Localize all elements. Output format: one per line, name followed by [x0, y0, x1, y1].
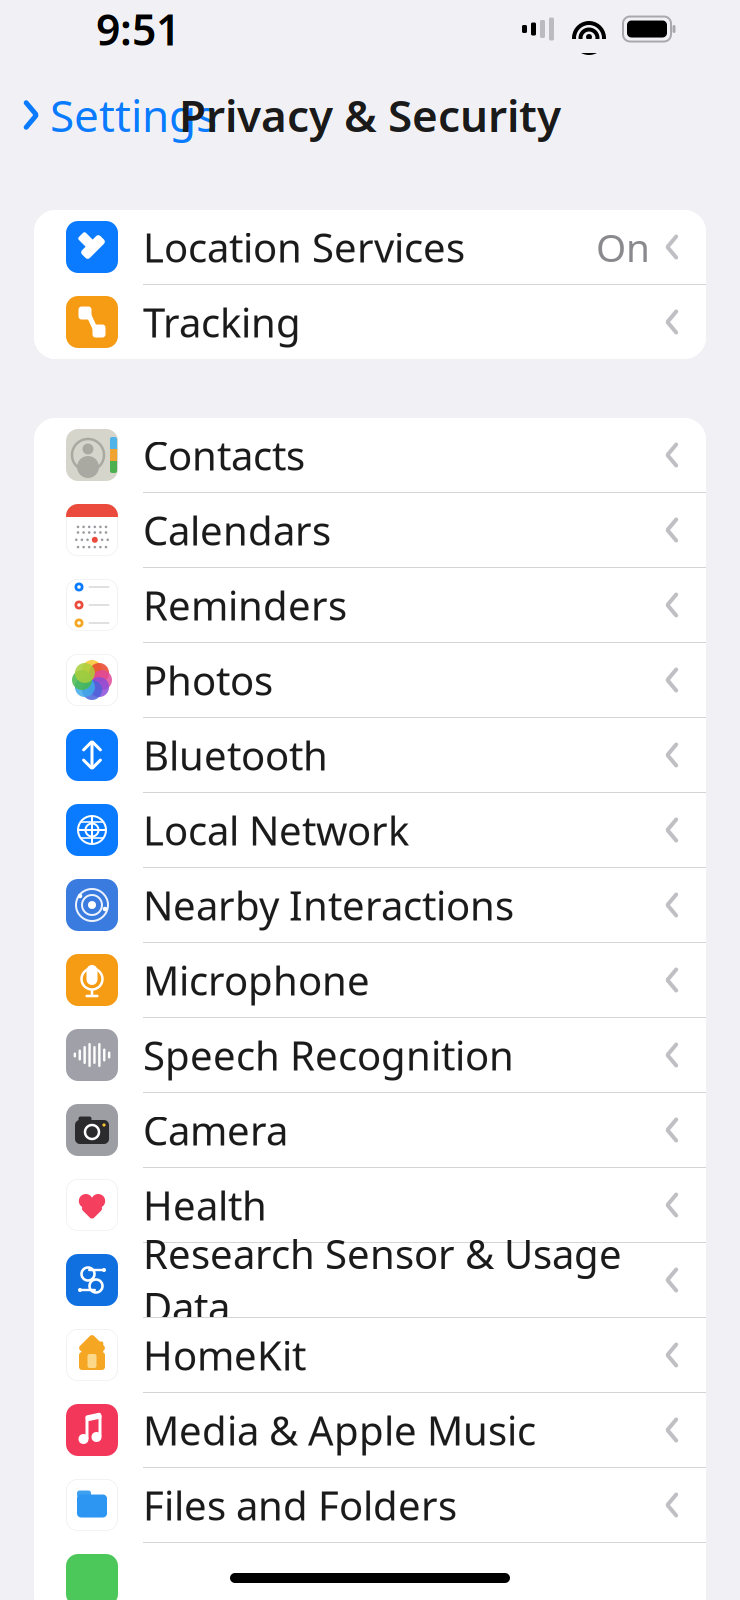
staticText: Tracking	[143, 295, 301, 348]
staticText: Privacy & Security	[179, 86, 561, 144]
staticText: Location Services	[143, 220, 465, 273]
staticText: 9:51	[96, 1, 180, 57]
staticText: Calendars	[143, 503, 331, 556]
button[interactable]: Contacts	[34, 418, 706, 493]
button[interactable]: HomeKit	[34, 1318, 706, 1393]
button[interactable]: Research Sensor & Usage Data	[34, 1243, 706, 1318]
button[interactable]: Reminders	[34, 568, 706, 643]
staticText: Health	[143, 1178, 267, 1231]
staticText: Reminders	[143, 578, 347, 631]
staticText: Microphone	[143, 953, 370, 1006]
staticText: Contacts	[143, 428, 305, 481]
button[interactable]: Tracking	[34, 285, 706, 359]
button[interactable]: Nearby Interactions	[34, 868, 706, 943]
staticText: On	[596, 221, 650, 273]
staticText: Research Sensor & Usage Data	[143, 1227, 622, 1333]
button[interactable]: Media & Apple Music	[34, 1393, 706, 1468]
button[interactable]: Local Network	[34, 793, 706, 868]
button[interactable]: Camera	[34, 1093, 706, 1168]
button[interactable]: Location Services	[34, 210, 706, 285]
staticText: Files and Folders	[143, 1478, 457, 1531]
staticText: Camera	[143, 1103, 288, 1156]
staticText: Photos	[143, 653, 273, 706]
button[interactable]: Settings	[0, 76, 217, 154]
button[interactable]	[34, 1543, 706, 1600]
staticText: Speech Recognition	[143, 1028, 514, 1081]
staticText: Nearby Interactions	[143, 878, 514, 931]
staticText: Media & Apple Music	[143, 1403, 536, 1456]
staticText: Local Network	[143, 803, 409, 856]
button[interactable]: Speech Recognition	[34, 1018, 706, 1093]
button[interactable]: Photos	[34, 643, 706, 718]
staticText: Settings	[50, 86, 217, 144]
button[interactable]: Health	[34, 1168, 706, 1243]
button[interactable]: Bluetooth	[34, 718, 706, 793]
staticText: Bluetooth	[143, 728, 328, 781]
button[interactable]: Microphone	[34, 943, 706, 1018]
button[interactable]: Calendars	[34, 493, 706, 568]
staticText: HomeKit	[143, 1328, 306, 1381]
button[interactable]: Files and Folders	[34, 1468, 706, 1543]
